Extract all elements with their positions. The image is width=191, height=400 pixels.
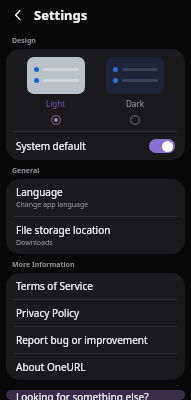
button[interactable]: About OneURL	[6, 354, 185, 380]
staticText: Language	[16, 185, 63, 199]
staticText: General	[12, 166, 40, 176]
button[interactable]: Looking for something else?	[6, 390, 185, 400]
staticText: Settings	[34, 6, 88, 24]
staticText: More Information	[12, 260, 75, 270]
button[interactable]: File storage location	[6, 217, 185, 254]
staticText: Design	[12, 36, 36, 46]
staticText: Dark	[126, 98, 144, 109]
button[interactable]: System default	[6, 132, 185, 160]
staticText: Privacy Policy	[16, 306, 80, 320]
button[interactable]: Report bug or improvement	[6, 327, 185, 353]
staticText: Downloads	[16, 238, 53, 248]
staticText: Looking for something else?	[16, 390, 149, 400]
staticText: Light	[46, 98, 66, 109]
button[interactable]: System default toggle	[149, 139, 175, 153]
button[interactable]: Light	[49, 113, 63, 127]
staticText: About OneURL	[16, 360, 86, 374]
staticText: System default	[16, 139, 86, 153]
button[interactable]: Back	[8, 5, 28, 25]
button[interactable]: Language	[6, 179, 185, 216]
button[interactable]: Terms of Service	[6, 273, 185, 299]
button[interactable]: Privacy Policy	[6, 300, 185, 326]
button[interactable]: Dark	[128, 113, 142, 127]
staticText: File storage location	[16, 223, 111, 237]
staticText: Terms of Service	[16, 279, 93, 293]
staticText: Report bug or improvement	[16, 333, 148, 347]
staticText: Change app language	[16, 200, 89, 210]
